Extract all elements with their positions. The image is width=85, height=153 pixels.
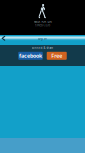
button[interactable]: facebook — [18, 52, 43, 60]
staticText: Free — [51, 52, 62, 59]
staticText: connect & share — [31, 46, 53, 50]
staticText: Log In — [38, 37, 47, 40]
button[interactable]: Back — [0, 35, 9, 42]
staticText: WALK FOR LIFE — [33, 20, 51, 23]
staticText: facebook — [19, 52, 42, 59]
staticText: FITNESS CLUB — [34, 23, 50, 27]
button[interactable]: Free — [47, 52, 67, 60]
